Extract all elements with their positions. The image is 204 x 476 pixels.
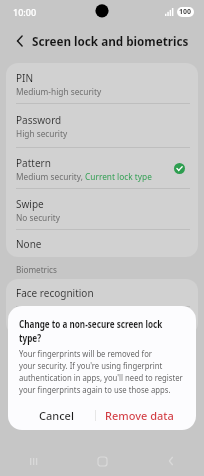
button[interactable]: Face recognition — [6, 279, 198, 307]
button[interactable]: Cancel — [18, 404, 95, 426]
staticText: High security — [16, 128, 68, 139]
staticText: PIN — [16, 71, 34, 85]
staticText: Fingerprints — [16, 314, 74, 328]
staticText: No security — [16, 212, 61, 223]
button[interactable]: Pattern — [6, 148, 198, 189]
staticText: Pattern — [16, 156, 51, 170]
staticText: Change to a non-secure screen lock type? — [19, 317, 196, 345]
staticText: Swipe — [16, 197, 44, 211]
button[interactable]: Navigate up — [8, 30, 30, 52]
button[interactable]: Password — [6, 104, 198, 148]
staticText: Remove data — [105, 408, 174, 423]
button[interactable]: PIN — [6, 63, 198, 104]
staticText: 100 — [179, 7, 192, 17]
staticText: None — [16, 237, 42, 251]
button[interactable]: Swipe — [6, 189, 198, 230]
button[interactable]: Remove data — [96, 404, 182, 426]
staticText: Medium security, Current lock type — [16, 171, 152, 182]
staticText: Screen lock and biometrics — [32, 33, 189, 49]
button[interactable]: None — [6, 230, 198, 257]
button[interactable]: Fingerprints — [6, 307, 198, 335]
staticText: Biometrics — [16, 264, 57, 275]
staticText: Cancel — [39, 408, 74, 423]
staticText: Your fingerprints will be removed for yo… — [19, 347, 196, 396]
staticText: Medium-high security — [16, 86, 102, 97]
staticText: 10:00 — [13, 6, 37, 18]
staticText: Password — [16, 113, 62, 127]
staticText: Face recognition — [16, 286, 94, 300]
